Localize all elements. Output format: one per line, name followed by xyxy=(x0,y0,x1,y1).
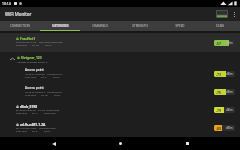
staticText: dBm xyxy=(226,90,233,94)
staticText: dBm xyxy=(226,126,233,130)
staticText: CONNECTION xyxy=(10,24,30,28)
button[interactable]: More options xyxy=(231,7,237,21)
button[interactable]: dlink_5198 xyxy=(0,101,240,119)
staticText: 5240 MHz xyxy=(16,43,28,46)
button[interactable]: Back xyxy=(41,137,67,150)
staticText: WPA2 xyxy=(54,93,61,96)
staticText: Access point xyxy=(25,86,44,90)
button[interactable]: Home xyxy=(107,137,133,150)
staticText: CH 3 xyxy=(32,111,38,114)
button[interactable]: Signal graph xyxy=(215,9,229,19)
staticText: C8:3A:35:4C:21:A8 xyxy=(16,40,37,43)
staticText: 2422 MHz xyxy=(16,111,28,114)
staticText: CH 8 xyxy=(41,75,47,78)
button[interactable]: FrauNet1 xyxy=(0,33,240,52)
staticText: WPA2 xyxy=(53,75,60,78)
staticText: NETGEAR INC xyxy=(47,90,63,93)
staticText: CH 6 xyxy=(32,129,38,132)
staticText: SCAN xyxy=(216,24,224,28)
button[interactable]: CHANNELS xyxy=(80,21,120,31)
staticText: Access point xyxy=(25,68,44,72)
button[interactable]: SPEED xyxy=(160,21,200,31)
staticText: WiFi Monitor xyxy=(5,11,32,17)
staticText: dlink_5198 xyxy=(20,104,38,108)
button[interactable]: NETWORKS xyxy=(40,21,80,31)
button[interactable]: wl-fb-e4B1-1-2A xyxy=(0,119,240,137)
staticText: -57 xyxy=(216,41,221,46)
button[interactable]: Netgear_123 xyxy=(0,52,240,65)
staticText: -75 xyxy=(216,90,221,95)
staticText: CH 36 xyxy=(41,93,48,96)
staticText: NETGEAR INC xyxy=(47,72,63,75)
button[interactable]: Recent apps xyxy=(174,137,200,150)
staticText: WPA2 WPA xyxy=(44,111,57,114)
staticText: -73 xyxy=(216,72,221,77)
staticText: WPA2 xyxy=(45,43,52,46)
button[interactable]: STRENGTH xyxy=(120,21,160,31)
staticText: D-Link Corporation xyxy=(38,108,60,111)
staticText: 38:17:C3:D5:1E:B5 xyxy=(16,126,37,129)
staticText: 10:14 xyxy=(2,1,11,6)
staticText: -79 xyxy=(216,108,221,113)
staticText: wl-fb-e4B1-1-2A xyxy=(20,122,46,126)
staticText: Number of access points: 2 xyxy=(17,60,48,63)
staticText: STRENGTH xyxy=(132,24,148,28)
staticText: dBm xyxy=(226,72,233,76)
staticText: 2437 MHz xyxy=(16,129,28,132)
staticText: CH 48 xyxy=(32,43,39,46)
button[interactable]: CONNECTION xyxy=(0,21,40,31)
staticText: SPEED xyxy=(175,24,185,28)
staticText: -83 xyxy=(216,126,221,131)
staticText: 10:45:77:C6:00:F4 xyxy=(25,90,45,93)
button[interactable]: SCAN xyxy=(200,21,240,31)
staticText: GIGATAB COMPUTER xyxy=(39,40,63,43)
staticText: Netgear_123 xyxy=(21,55,42,59)
staticText: FrauNet1 xyxy=(20,36,36,40)
staticText: 5180 MHz xyxy=(25,93,37,96)
staticText: Sercomm Corp xyxy=(39,126,56,129)
staticText: 10:45:77:C6:00:F5 xyxy=(25,72,45,75)
button[interactable]: Access point xyxy=(0,65,240,83)
staticText: dBm xyxy=(226,108,233,112)
staticText: BC:F6:85:26:5F:90 xyxy=(16,108,36,111)
staticText: dBm xyxy=(226,41,233,45)
staticText: WPA2 xyxy=(44,129,51,132)
button[interactable]: Access point xyxy=(0,83,240,101)
staticText: NETWORKS xyxy=(52,24,69,28)
staticText: 2447 MHz xyxy=(25,75,37,78)
staticText: CHANNELS xyxy=(92,24,108,28)
